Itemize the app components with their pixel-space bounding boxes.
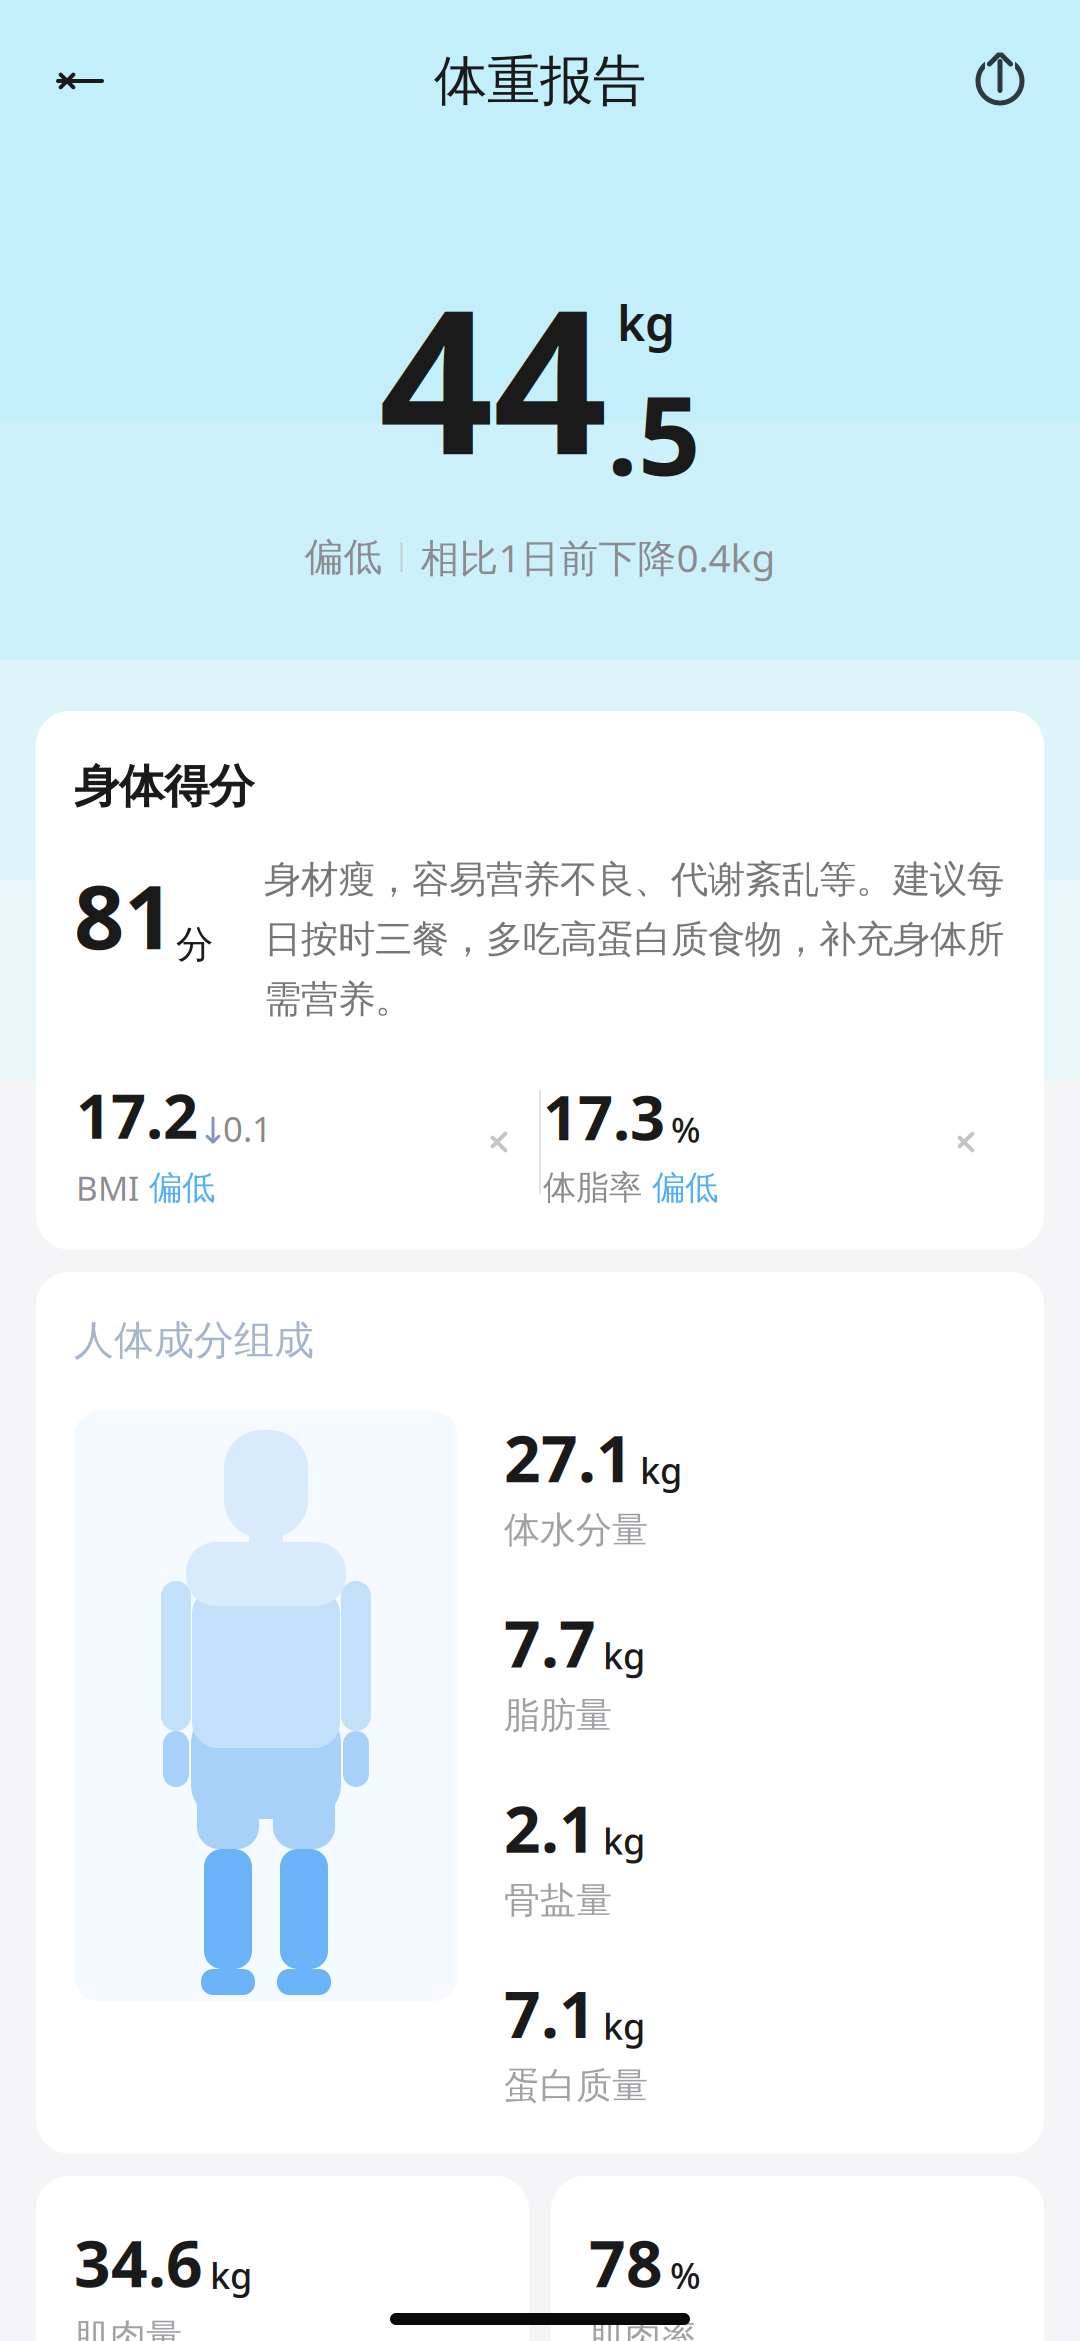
staticText: 78 xyxy=(589,2220,663,2305)
staticText: kg xyxy=(603,1631,645,1679)
staticText: 2.1 xyxy=(504,1785,596,1870)
staticText: 体水分量 xyxy=(504,1508,648,1552)
staticText: kg xyxy=(617,291,675,354)
staticText: 脂肪量 xyxy=(504,1693,612,1737)
staticText: 身体得分 xyxy=(74,759,254,815)
staticText: 7.1 xyxy=(504,1971,596,2056)
button[interactable]: Share xyxy=(960,41,1040,121)
staticText: 17.3 xyxy=(543,1076,665,1157)
staticText: 人体成分组成 xyxy=(74,1316,314,1365)
staticText: % xyxy=(670,2251,701,2299)
staticText: 身材瘦，容易营养不良、代谢紊乱等。建议每日按时三餐，多吃高蛋白质食物，补充身体所… xyxy=(264,857,1004,1022)
button[interactable]: 17.2 xyxy=(74,1074,539,1210)
staticText: 体脂率 xyxy=(543,1167,642,1208)
staticText: 7.7 xyxy=(504,1600,596,1685)
staticText: 偏低 xyxy=(304,533,382,581)
staticText: 81 xyxy=(74,857,174,973)
staticText: 相比1日前下降0.4kg xyxy=(420,532,775,583)
button[interactable]: 17.3 xyxy=(541,1076,1006,1208)
staticText: 0.1 xyxy=(223,1106,272,1152)
staticText: 肌肉率 xyxy=(589,2315,697,2341)
staticText: 34.6 xyxy=(74,2220,203,2305)
staticText: % xyxy=(671,1106,701,1152)
staticText: kg xyxy=(210,2251,252,2299)
staticText: kg xyxy=(640,1446,682,1494)
staticText: .5 xyxy=(607,360,701,506)
button[interactable]: Back xyxy=(40,41,120,121)
staticText: 肌肉量 xyxy=(74,2315,182,2341)
staticText: kg xyxy=(603,2002,645,2050)
staticText: BMI xyxy=(76,1166,139,1210)
staticText: 44 xyxy=(379,244,607,510)
staticText: 体重报告 xyxy=(434,48,646,114)
staticText: 分 xyxy=(176,922,213,967)
staticText: 偏低 xyxy=(652,1167,718,1208)
staticText: 17.2 xyxy=(76,1074,198,1156)
button[interactable]: 78 xyxy=(551,2176,1044,2341)
staticText: kg xyxy=(603,1817,645,1864)
button[interactable]: 34.6 xyxy=(36,2176,529,2341)
staticText: 偏低 xyxy=(149,1167,215,1208)
staticText: 蛋白质量 xyxy=(504,2064,648,2108)
staticText: 骨盐量 xyxy=(504,1878,612,1923)
staticText: 27.1 xyxy=(504,1415,633,1500)
